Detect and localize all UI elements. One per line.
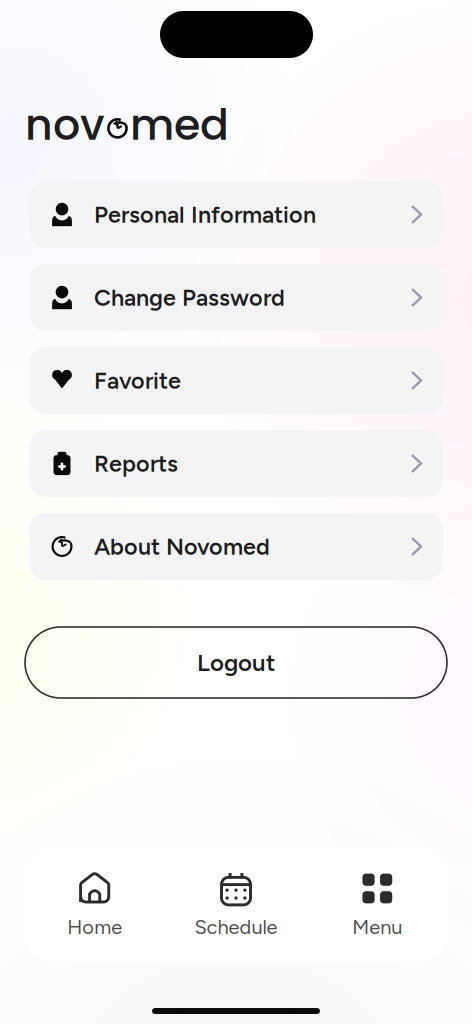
staticText: Menu	[352, 915, 402, 939]
staticText: Personal Information	[94, 200, 316, 228]
staticText: Change Password	[94, 283, 285, 311]
button[interactable]: Schedule	[165, 848, 307, 962]
button[interactable]: Change Password	[29, 264, 443, 331]
staticText: About Novomed	[94, 532, 270, 560]
staticText: Favorite	[94, 366, 181, 394]
staticText: Logout	[197, 648, 275, 677]
staticText: Reports	[94, 449, 178, 477]
button[interactable]: Personal Information	[29, 181, 443, 248]
button[interactable]: Favorite	[29, 347, 443, 414]
staticText: nov	[25, 95, 105, 155]
staticText: Home	[67, 915, 122, 939]
button[interactable]: Reports	[29, 430, 443, 497]
button[interactable]: Logout	[25, 627, 447, 698]
staticText: Schedule	[194, 915, 277, 939]
button[interactable]: Menu	[307, 848, 448, 962]
button[interactable]: About Novomed	[29, 513, 443, 580]
staticText: med	[130, 95, 229, 155]
button[interactable]: Home	[24, 848, 165, 962]
